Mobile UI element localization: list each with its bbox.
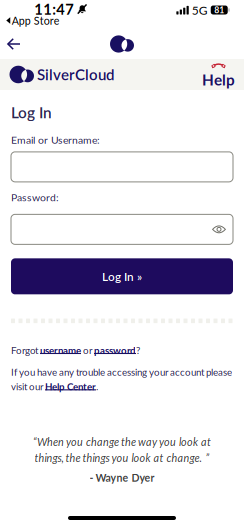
- staticText: Help Center: [45, 381, 96, 392]
- staticText: Forgot: [11, 344, 40, 356]
- button[interactable]: username: [40, 344, 81, 356]
- staticText: Log In: [11, 103, 52, 121]
- staticText: - Wayne Dyer: [89, 471, 154, 484]
- staticText: Email or Username:: [11, 133, 100, 146]
- staticText: 11:47: [34, 0, 74, 18]
- staticText: or: [81, 344, 94, 356]
- staticText: App Store: [12, 14, 60, 27]
- staticText: ?: [136, 344, 140, 356]
- button[interactable]: Log In »: [11, 258, 233, 294]
- staticText: things, the things you look at change. ”: [34, 451, 209, 464]
- button[interactable]: Show password: [212, 216, 233, 243]
- button[interactable]: password: [94, 344, 136, 356]
- staticText: Help: [202, 70, 235, 89]
- staticText: username: [40, 344, 81, 356]
- button[interactable]: Help: [202, 60, 244, 89]
- staticText: visit our: [11, 381, 45, 392]
- staticText: “When you change the way you look at: [33, 435, 211, 448]
- staticText: Password:: [11, 191, 59, 203]
- staticText: 81: [214, 5, 224, 15]
- button[interactable]: Help Center: [45, 381, 96, 392]
- staticText: password: [94, 344, 136, 356]
- staticText: .: [96, 381, 98, 392]
- staticText: Log In »: [102, 269, 142, 283]
- staticText: If you have any trouble accessing your a…: [11, 366, 232, 378]
- button[interactable]: Back: [0, 33, 28, 55]
- staticText: SilverCloud: [37, 65, 114, 84]
- staticText: 5G: [192, 3, 208, 17]
